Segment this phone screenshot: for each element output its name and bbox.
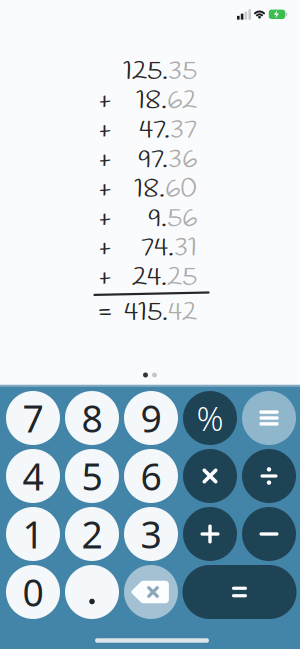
staticText: 35 (168, 54, 197, 90)
staticText: 18. (134, 172, 165, 207)
staticText: 8 (81, 393, 102, 443)
staticText: 60 (165, 172, 197, 207)
staticText: % (196, 396, 223, 440)
staticText: 3 (140, 509, 161, 559)
button[interactable]: 0 (6, 565, 60, 619)
staticText: + (99, 83, 111, 119)
button[interactable]: 3 (124, 507, 178, 561)
button[interactable]: 5 (65, 449, 119, 503)
staticText: 74. (141, 231, 174, 266)
staticText: + (99, 172, 111, 207)
button[interactable]: Decimal point (65, 565, 119, 619)
staticText: 0 (22, 567, 43, 617)
staticText: 37 (170, 113, 197, 148)
staticText: + (99, 113, 111, 148)
button[interactable]: Backspace (124, 565, 178, 619)
staticText: 56 (167, 201, 197, 237)
staticText: 9. (148, 201, 167, 237)
staticText: 5 (81, 451, 102, 501)
button[interactable]: Multiply (183, 449, 237, 503)
button[interactable]: Divide (242, 449, 296, 503)
staticText: + (99, 201, 111, 237)
staticText: + (99, 142, 111, 178)
staticText: 18. (136, 83, 167, 119)
button[interactable]: 6 (124, 449, 178, 503)
button[interactable]: 1 (6, 507, 60, 561)
button[interactable]: 7 (6, 391, 60, 445)
staticText: 7 (22, 393, 43, 443)
staticText: 42 (168, 295, 197, 331)
staticText: 36 (168, 142, 197, 178)
staticText: 25 (167, 260, 197, 296)
staticText: 4 (22, 451, 43, 501)
staticText: 62 (167, 83, 197, 119)
staticText: 9 (140, 393, 161, 443)
button[interactable]: Menu (242, 391, 296, 445)
staticText: 47. (139, 113, 170, 148)
button[interactable]: 4 (6, 449, 60, 503)
button[interactable]: 9 (124, 391, 178, 445)
staticText: 31 (174, 231, 197, 266)
staticText: 1 (22, 509, 43, 559)
staticText: + (99, 231, 111, 266)
button[interactable]: 8 (65, 391, 119, 445)
button[interactable]: Add (183, 507, 237, 561)
button[interactable]: Subtract (242, 507, 296, 561)
staticText: 125. (123, 54, 168, 90)
button[interactable]: Percent (183, 391, 237, 445)
staticText: 97. (138, 142, 168, 178)
staticText: 24. (132, 260, 167, 296)
staticText: + (99, 260, 111, 296)
staticText: 2 (81, 509, 102, 559)
staticText: 415. (124, 295, 168, 331)
button[interactable]: Equals (182, 565, 296, 619)
staticText: = (97, 295, 113, 331)
button[interactable]: 2 (65, 507, 119, 561)
staticText: 6 (140, 451, 161, 501)
